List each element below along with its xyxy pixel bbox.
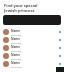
staticText: Name [11, 29, 20, 33]
staticText: Find your special [4, 3, 38, 8]
button[interactable] [3, 15, 61, 25]
button[interactable]: Name [0, 60, 64, 68]
button[interactable]: Name [0, 36, 64, 44]
staticText: message [11, 57, 22, 60]
staticText: Name [11, 37, 20, 41]
staticText: Name [11, 45, 20, 49]
staticText: Jewish princess [4, 8, 35, 13]
staticText: Name [11, 61, 20, 65]
staticText: message [11, 41, 22, 44]
staticText: Name [11, 53, 20, 57]
staticText: message [11, 49, 22, 52]
staticText: message [11, 33, 22, 36]
button[interactable]: Name [0, 52, 64, 60]
button[interactable]: Name [0, 28, 64, 36]
button[interactable]: Name [0, 44, 64, 52]
staticText: message [11, 65, 22, 68]
